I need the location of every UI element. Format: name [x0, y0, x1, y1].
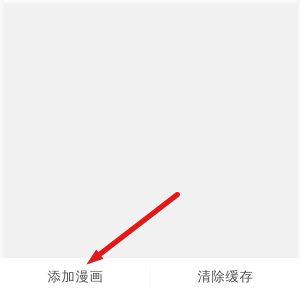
staticText: 添加漫画 [47, 268, 102, 285]
button[interactable]: 添加漫画 [0, 258, 150, 295]
staticText: 清除缓存 [197, 268, 252, 285]
button[interactable]: 清除缓存 [150, 258, 300, 295]
